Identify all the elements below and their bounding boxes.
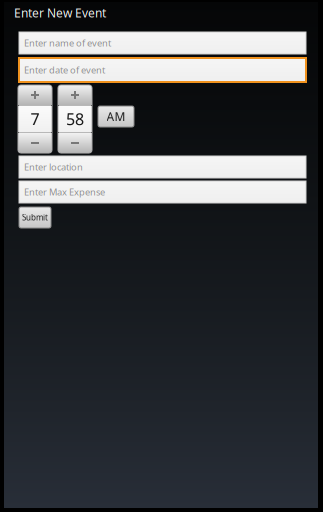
button[interactable]: Enter date of event [19,58,306,82]
button[interactable]: AM [98,106,134,127]
staticText: Enter Max Expense [24,186,105,198]
button[interactable]: Enter name of event [19,32,306,54]
button[interactable]: Decrease [18,133,52,153]
staticText: AM [106,108,125,124]
button[interactable]: Increase [58,85,92,105]
staticText: Enter date of event [24,64,105,76]
staticText: Enter name of event [24,37,111,49]
button[interactable]: Enter location [19,156,306,178]
button[interactable]: Enter Max Expense [19,181,306,203]
button[interactable]: Increase [18,85,52,105]
staticText: 7 [30,108,39,130]
staticText: Enter location [24,161,83,173]
staticText: Submit [22,212,48,223]
button[interactable]: Decrease [58,133,92,153]
staticText: 58 [66,108,84,130]
button[interactable]: Submit [19,207,51,228]
staticText: Enter New Event [14,5,106,21]
